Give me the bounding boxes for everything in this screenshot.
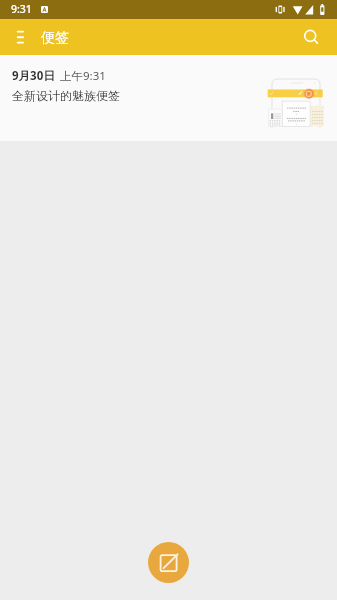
staticText: 便签 [41,29,69,47]
staticText: 上午9:31 [60,68,106,84]
staticText: 9月30日 [12,68,55,84]
button[interactable]: Menu [0,19,36,55]
staticText: 全新设计的魅族便签 [12,88,120,103]
staticText: 9:31 [11,2,32,16]
button[interactable]: Search [301,19,337,55]
button[interactable]: New note [148,542,189,583]
button[interactable]: 9月30日 [0,55,337,141]
